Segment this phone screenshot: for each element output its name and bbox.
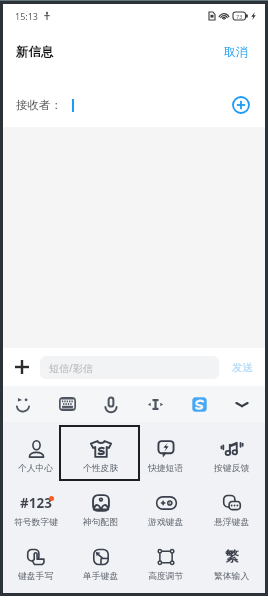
staticText: 73 [236,13,243,20]
staticText: 取消 [224,45,248,60]
staticText: 发送 [232,361,253,374]
button[interactable]: Collapse keyboard [221,386,263,422]
staticText: 单手键盘 [83,571,119,582]
button[interactable]: Cursor move [133,386,177,422]
button[interactable]: Keyboard [45,386,89,422]
staticText: 短信/彩信 [49,361,93,375]
button[interactable]: 短信/彩信 [40,356,219,379]
staticText: 键盘手写 [18,571,54,582]
staticText: 悬浮键盘 [214,517,250,528]
staticText: 15:13 [15,10,39,22]
button[interactable]: 个性皮肤 [68,429,133,483]
button[interactable]: Sogou input method [177,386,221,422]
button[interactable]: 发送 [219,348,265,386]
button[interactable]: Emoji [1,386,45,422]
button[interactable]: 个人中心 [3,429,68,483]
staticText: 快捷短语 [148,463,184,474]
button[interactable]: 单手键盘 [68,537,133,591]
button[interactable]: #123 [3,483,68,537]
button[interactable]: 键盘手写 [3,537,68,591]
staticText: 神句配图 [83,517,119,528]
staticText: 符号数字键 [14,517,58,528]
staticText: 个人中心 [18,463,54,474]
staticText: 个性皮肤 [83,463,119,474]
button[interactable]: Attach [3,348,40,386]
button[interactable]: Voice input [89,386,133,422]
staticText: #123 [20,494,52,512]
staticText: 新信息 [16,44,54,60]
button[interactable]: 繁 [199,537,265,591]
staticText: 游戏键盘 [148,517,184,528]
staticText: 接收者： [16,98,62,112]
button[interactable]: 神句配图 [68,483,133,537]
button[interactable]: 按键反馈 [199,429,265,483]
staticText: 按键反馈 [214,463,250,474]
staticText: 繁体输入 [214,571,250,582]
button[interactable]: 游戏键盘 [133,483,199,537]
button[interactable]: Add recipient [230,94,252,116]
button[interactable]: 悬浮键盘 [199,483,265,537]
button[interactable]: 高度调节 [133,537,199,591]
button[interactable]: 取消 [220,39,252,66]
staticText: 高度调节 [148,571,184,582]
button[interactable]: 快捷短语 [133,429,199,483]
staticText: 繁 [225,548,239,566]
